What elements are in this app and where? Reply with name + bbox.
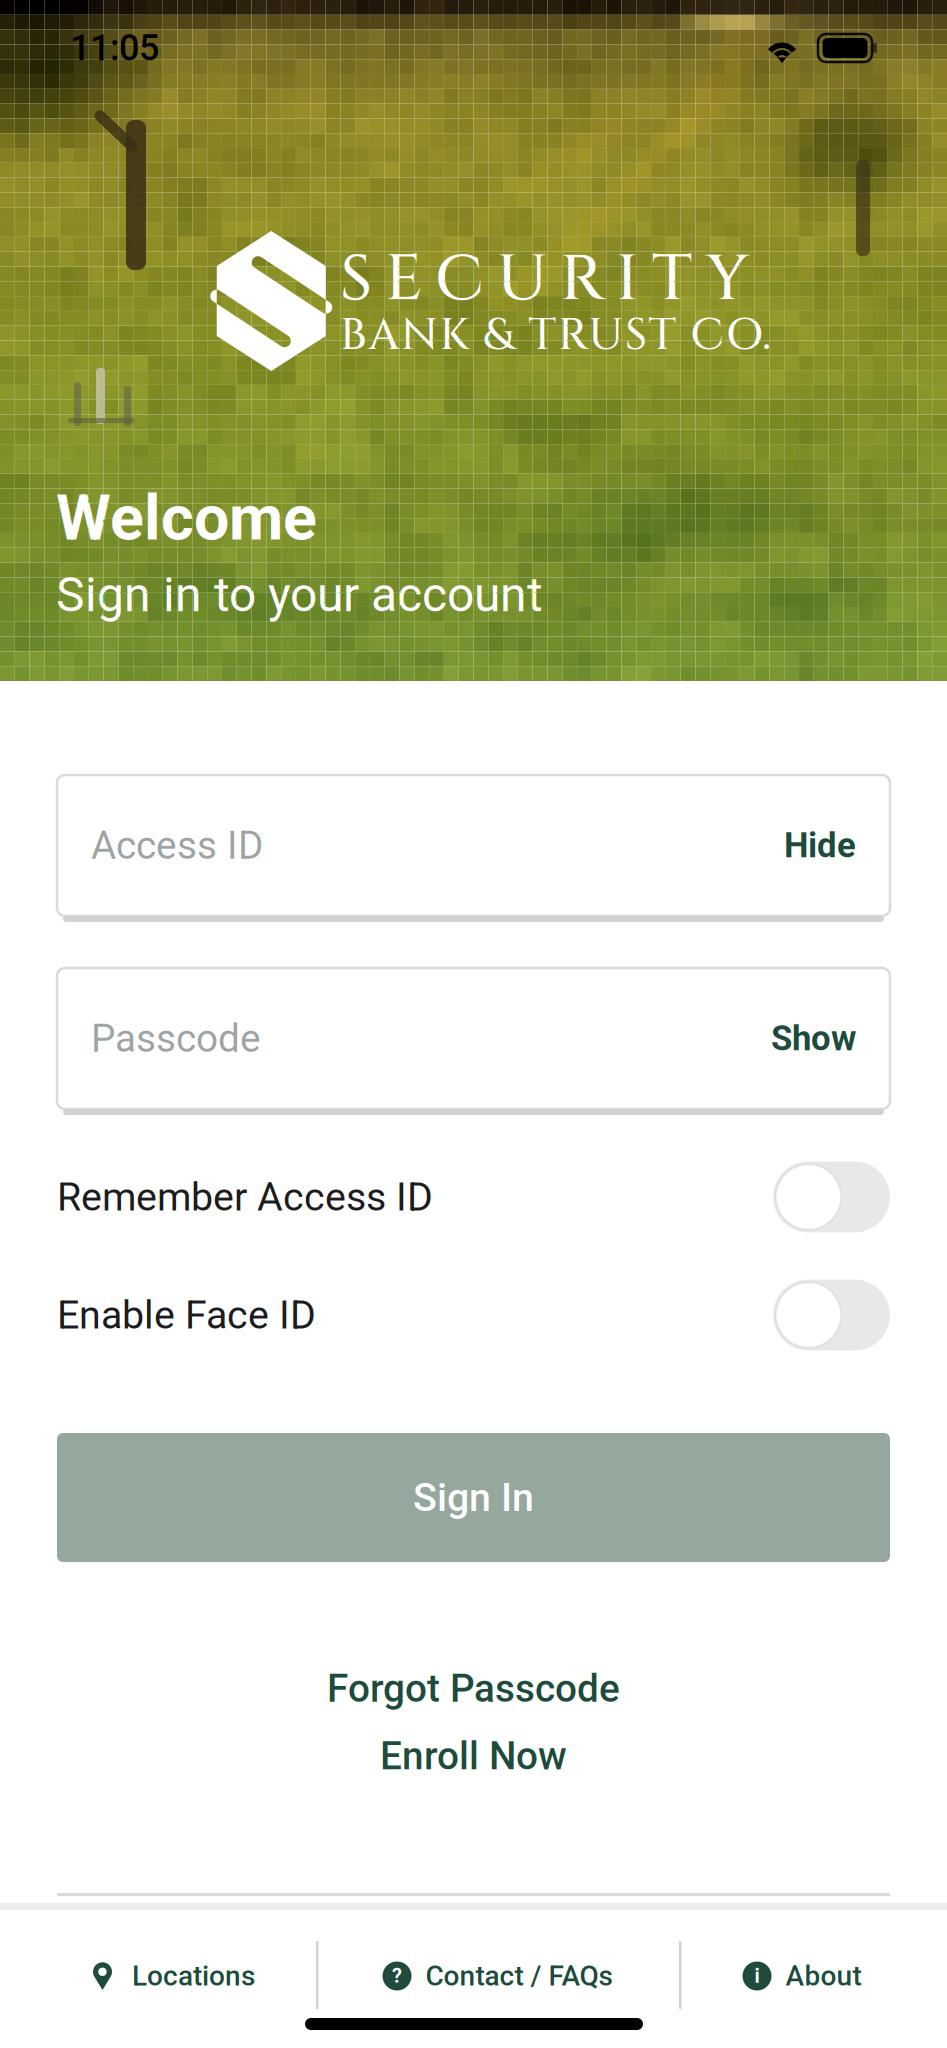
staticText: BANK & TRUST CO. xyxy=(340,306,770,365)
button[interactable]: Forgot Passcode xyxy=(327,1666,620,1711)
staticText: 11:05 xyxy=(70,27,159,69)
button[interactable]: Enable Face ID xyxy=(57,1275,890,1355)
staticText: Sign In xyxy=(413,1474,534,1521)
staticText: Hide xyxy=(784,825,856,866)
staticText: Sign in to your account xyxy=(56,567,543,623)
staticText: Forgot Passcode xyxy=(327,1666,620,1711)
button[interactable]: Hide xyxy=(784,825,856,866)
button[interactable]: i xyxy=(679,1934,947,2018)
staticText: Access ID xyxy=(91,823,263,868)
button[interactable]: Locations xyxy=(0,1934,316,2018)
staticText: Locations xyxy=(132,1960,255,1992)
staticText: Enroll Now xyxy=(380,1733,567,1779)
button[interactable]: ? xyxy=(316,1934,679,2018)
button[interactable]: Enroll Now xyxy=(380,1733,567,1779)
staticText: Show xyxy=(771,1018,856,1059)
staticText: ? xyxy=(392,1964,402,1988)
button[interactable]: Remember Access ID xyxy=(57,1157,890,1237)
staticText: Welcome xyxy=(56,481,317,555)
staticText: Remember Access ID xyxy=(57,1174,433,1220)
button[interactable]: Show xyxy=(771,1018,856,1059)
staticText: i xyxy=(754,1964,759,1988)
staticText: Enable Face ID xyxy=(57,1292,316,1338)
staticText: Passcode xyxy=(91,1016,261,1061)
staticText: Contact / FAQs xyxy=(425,1960,612,1992)
staticText: SECURITY xyxy=(340,237,749,323)
staticText: About xyxy=(785,1960,861,1992)
button[interactable]: Sign In xyxy=(57,1433,890,1562)
